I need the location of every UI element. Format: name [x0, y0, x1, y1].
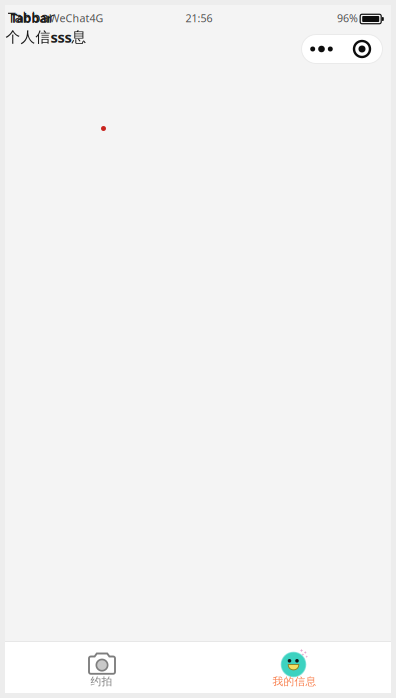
staticText: 我的信息: [272, 675, 316, 688]
button[interactable]: 约拍: [5, 642, 198, 693]
staticText: 息: [71, 28, 86, 46]
button[interactable]: 我的信息: [198, 642, 391, 693]
staticText: WeChat4G: [49, 11, 103, 25]
staticText: sss: [50, 27, 71, 47]
staticText: 96%: [337, 11, 358, 25]
staticText: 约拍: [90, 675, 112, 688]
staticText: Tabbar: [7, 7, 54, 27]
staticText: Tabbar: [10, 10, 51, 26]
button[interactable]: More: [301, 34, 341, 63]
staticText: 个人信: [5, 28, 50, 46]
staticText: 21:56: [185, 11, 212, 25]
button[interactable]: Close mini program: [341, 34, 382, 63]
